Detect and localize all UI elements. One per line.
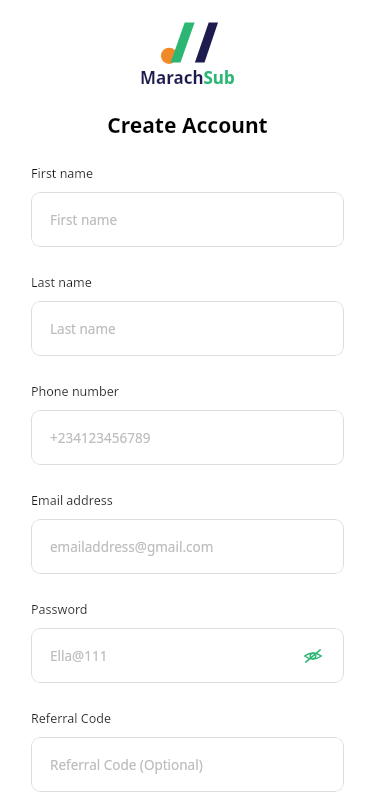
- staticText: Referral Code: [31, 710, 111, 727]
- staticText: MarachSub: [140, 66, 235, 89]
- staticText: First name: [50, 211, 325, 229]
- button[interactable]: Show password: [301, 644, 325, 668]
- staticText: Referral Code (Optional): [50, 756, 325, 774]
- staticText: Last name: [31, 274, 92, 291]
- staticText: First name: [31, 165, 94, 182]
- staticText: Password: [31, 601, 88, 618]
- staticText: Phone number: [31, 383, 119, 400]
- staticText: +234123456789: [50, 429, 325, 447]
- button[interactable]: Referral Code (Optional): [31, 737, 344, 792]
- staticText: Ella@111: [50, 647, 301, 665]
- button[interactable]: Ella@111: [31, 628, 344, 683]
- staticText: Last name: [50, 320, 325, 338]
- staticText: emailaddress@gmail.com: [50, 538, 325, 556]
- staticText: Email address: [31, 492, 113, 509]
- button[interactable]: emailaddress@gmail.com: [31, 519, 344, 574]
- button[interactable]: Last name: [31, 301, 344, 356]
- button[interactable]: First name: [31, 192, 344, 247]
- button[interactable]: +234123456789: [31, 410, 344, 465]
- staticText: Create Account: [107, 111, 268, 140]
